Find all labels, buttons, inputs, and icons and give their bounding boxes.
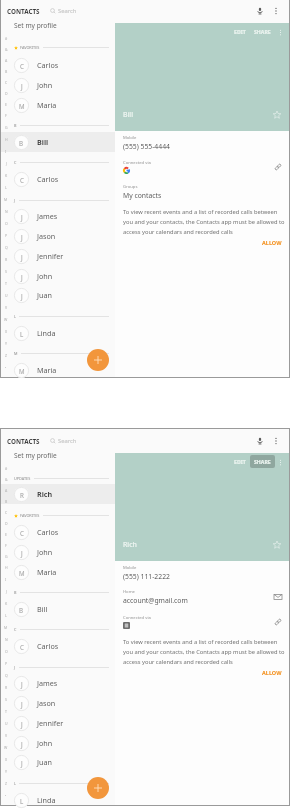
button[interactable]: B [1, 132, 115, 152]
button[interactable]: SHARE [250, 455, 275, 468]
staticText: S [5, 697, 7, 702]
staticText: & [5, 477, 8, 482]
button[interactable]: M [1, 95, 115, 115]
button[interactable]: J [1, 673, 115, 693]
button[interactable]: More options [275, 457, 285, 467]
staticText: Rich [37, 489, 53, 499]
button[interactable]: J [1, 713, 115, 733]
staticText: SHARE [254, 28, 271, 35]
staticText: C [14, 627, 17, 632]
staticText: N [5, 209, 8, 214]
button[interactable]: M [1, 360, 115, 380]
staticText: H [5, 137, 8, 142]
staticText: Groups [123, 184, 138, 190]
staticText: C [20, 643, 24, 651]
staticText: J [21, 233, 23, 241]
staticText: Maria [37, 365, 57, 375]
button[interactable]: Add contact [87, 777, 109, 799]
button[interactable]: J [1, 206, 115, 226]
staticText: • [5, 793, 7, 798]
button[interactable]: C [1, 169, 115, 189]
staticText: Set my profile [14, 451, 57, 460]
button[interactable]: C [1, 522, 115, 542]
button[interactable]: J [1, 693, 115, 713]
button[interactable]: R [1, 484, 115, 504]
button[interactable]: J [1, 75, 115, 95]
button[interactable]: More options [269, 4, 283, 18]
staticText: Carlos [37, 641, 59, 651]
staticText: To view recent events and a list of reco… [123, 208, 286, 236]
staticText: R [5, 685, 8, 690]
button[interactable]: ALLOW [259, 237, 285, 248]
staticText: John [37, 547, 53, 557]
button[interactable]: EDIT [230, 455, 250, 468]
staticText: J [14, 665, 16, 670]
button[interactable]: Set my profile [1, 447, 115, 464]
button[interactable]: J [1, 285, 115, 305]
button[interactable]: More options [275, 27, 285, 37]
button[interactable]: C [1, 55, 115, 75]
button[interactable]: mail [272, 591, 284, 603]
button[interactable]: Connected via [115, 609, 289, 634]
button[interactable]: SHARE [250, 25, 275, 38]
button[interactable]: Add contact [87, 349, 109, 371]
staticText: Juan [37, 290, 52, 300]
staticText: John [37, 271, 53, 281]
staticText: D [5, 521, 8, 526]
button[interactable]: Set my profile [1, 17, 115, 34]
staticText: J [21, 740, 23, 748]
button[interactable]: Connected via [115, 154, 289, 179]
button[interactable]: Voice search [253, 434, 267, 448]
button[interactable]: More options [269, 434, 283, 448]
button[interactable]: Mobile [115, 561, 289, 584]
button[interactable]: J [1, 542, 115, 562]
button[interactable]: J [1, 246, 115, 266]
button[interactable]: ALLOW [259, 667, 285, 678]
button[interactable]: B [1, 599, 115, 619]
button[interactable]: link [272, 161, 284, 173]
button[interactable]: Favorite [272, 540, 282, 550]
staticText: Linda [37, 795, 56, 805]
staticText: James [37, 211, 58, 221]
staticText: Z [5, 781, 8, 786]
staticText: L [14, 314, 16, 319]
staticText: Set my profile [14, 21, 57, 30]
button[interactable]: L [1, 323, 115, 343]
staticText: C [20, 62, 24, 70]
staticText: To view recent events and a list of reco… [123, 638, 286, 666]
staticText: B [19, 606, 24, 614]
button[interactable]: Home [115, 584, 289, 609]
button[interactable]: Favorite [272, 110, 282, 120]
button[interactable]: EDIT [230, 25, 250, 38]
staticText: J [6, 589, 7, 594]
button[interactable]: J [1, 752, 115, 772]
staticText: Bill [123, 110, 133, 120]
button[interactable]: J [1, 226, 115, 246]
staticText: (555) 111-2222 [123, 572, 170, 581]
staticText: John [37, 80, 53, 90]
button[interactable]: Mobile [115, 131, 289, 154]
button[interactable]: Groups [115, 179, 289, 204]
button[interactable]: L [1, 790, 115, 809]
button[interactable]: Voice search [253, 4, 267, 18]
staticText: P [5, 233, 8, 238]
button[interactable]: J [1, 733, 115, 753]
staticText: G [5, 554, 8, 559]
staticText: H [5, 565, 8, 570]
staticText: M [19, 367, 25, 375]
button[interactable]: C [1, 636, 115, 656]
staticText: M [19, 569, 25, 577]
button[interactable]: J [1, 266, 115, 286]
staticText: U [5, 293, 8, 298]
staticText: M [4, 197, 8, 202]
staticText: Connected via [123, 160, 151, 166]
button[interactable]: M [1, 562, 115, 582]
staticText: Jennifer [37, 251, 64, 261]
staticText: J [21, 680, 23, 688]
button[interactable]: link [272, 616, 284, 628]
staticText: Y [5, 341, 7, 346]
staticText: Bill [37, 604, 48, 614]
staticText: S [5, 269, 7, 274]
staticText: J [21, 720, 23, 728]
staticText: P [5, 661, 8, 666]
